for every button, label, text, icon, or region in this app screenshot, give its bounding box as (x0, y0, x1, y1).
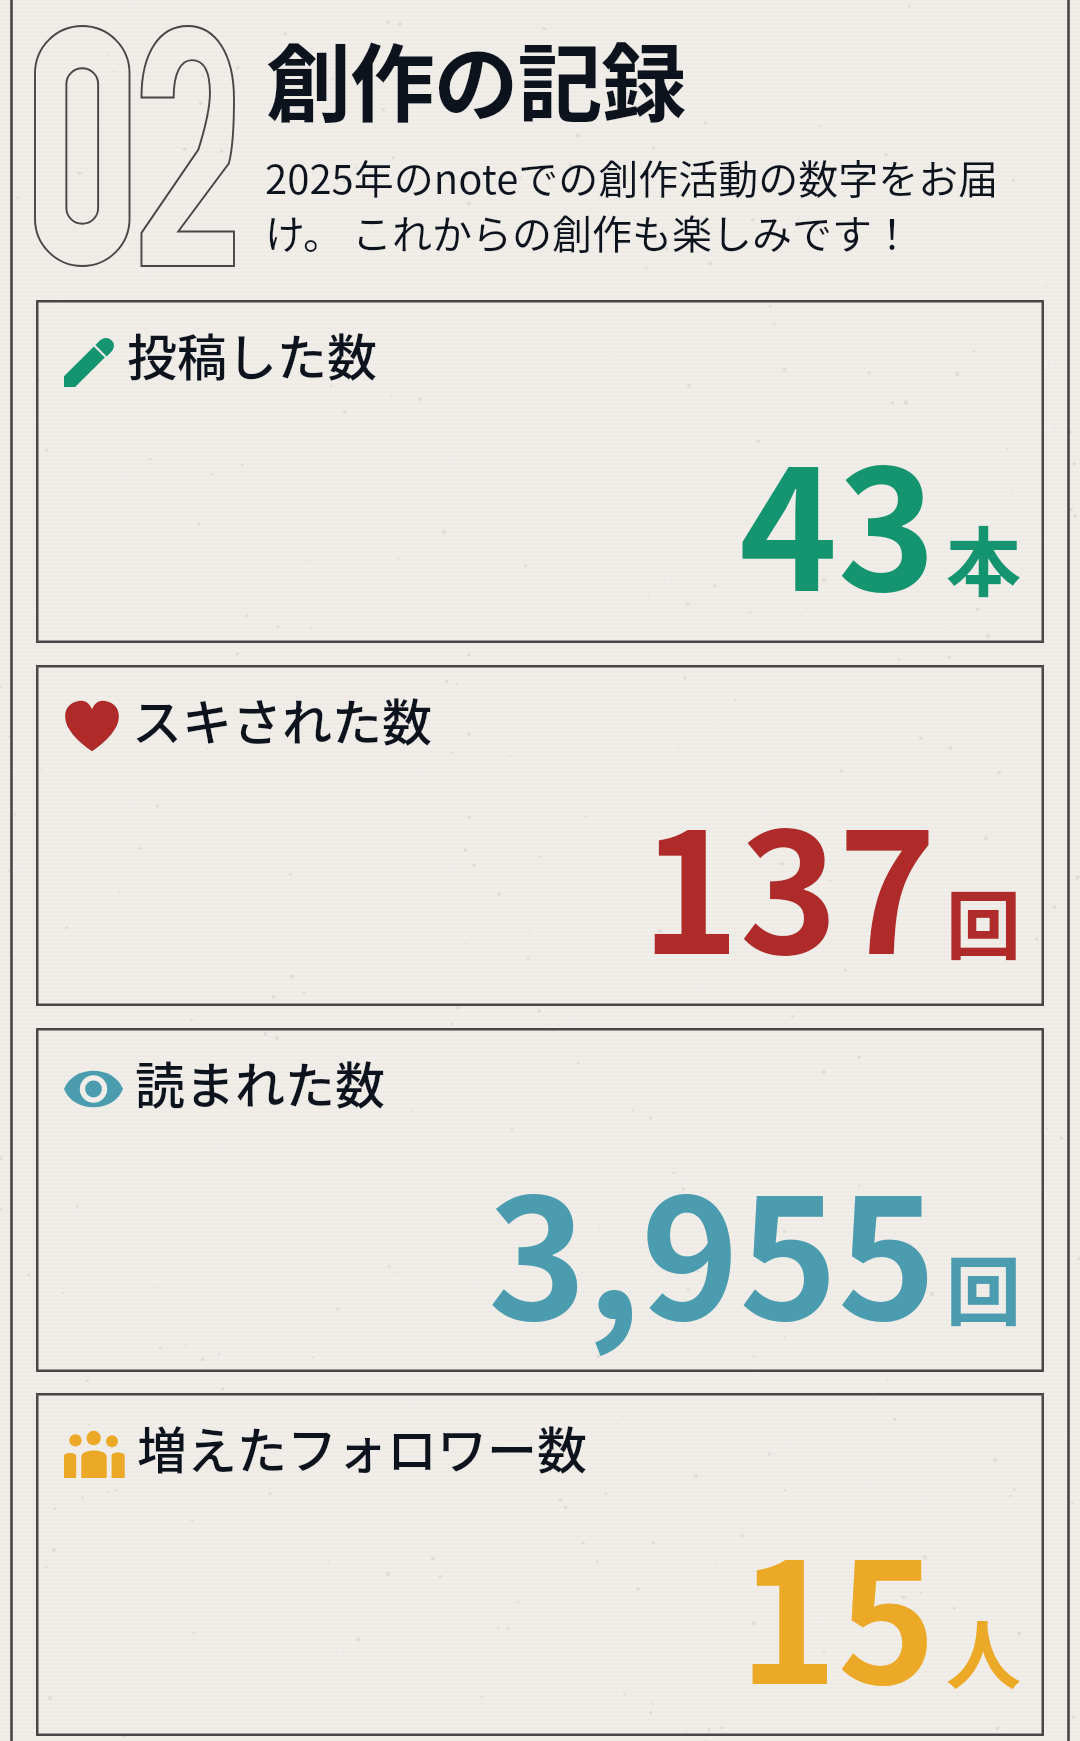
staticText: 3,955 (488, 1126, 937, 1368)
button[interactable]: Views (36, 1028, 1044, 1372)
button[interactable]: Likes (36, 665, 1044, 1006)
staticText: 本 (946, 503, 1022, 612)
other: Section 02 (35, 26, 234, 266)
staticText: 読まれた数 (135, 1046, 385, 1118)
staticText: 回 (946, 866, 1022, 975)
staticText: 43 (739, 397, 937, 639)
staticText: 増えたフォロワー数 (137, 1411, 587, 1483)
other: Posts (64, 336, 115, 387)
staticText: 回 (946, 1232, 1022, 1341)
staticText: 2025年のnoteでの創作活動の数字をお届け。 これからの創作も楽しみです！ (265, 148, 1025, 261)
staticText: 137 (641, 760, 937, 1002)
button[interactable]: Posts (36, 300, 1044, 643)
staticText: 創作の記録 (266, 16, 686, 139)
other: Views (64, 1063, 123, 1115)
other: Likes (64, 698, 120, 754)
button[interactable]: Followers (36, 1393, 1044, 1736)
other: Followers (64, 1431, 125, 1478)
staticText: 投稿した数 (127, 318, 377, 390)
staticText: スキされた数 (132, 683, 432, 755)
staticText: 人 (946, 1596, 1022, 1705)
staticText: 15 (739, 1490, 937, 1732)
